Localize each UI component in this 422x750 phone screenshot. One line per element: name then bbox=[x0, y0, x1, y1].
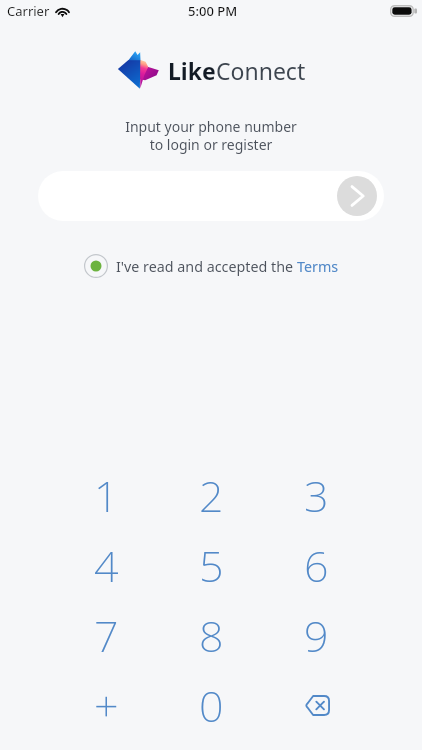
staticText: Like bbox=[168, 55, 216, 86]
button[interactable]: 3 bbox=[264, 460, 369, 530]
staticText: 3 bbox=[304, 466, 329, 525]
button[interactable]: 2 bbox=[159, 460, 264, 530]
staticText: 6 bbox=[304, 536, 329, 595]
button[interactable]: Backspace bbox=[264, 670, 369, 740]
button[interactable]: 1 bbox=[53, 460, 159, 530]
staticText: 7 bbox=[94, 606, 119, 665]
button[interactable]: + bbox=[53, 670, 159, 740]
staticText: 2 bbox=[199, 466, 224, 525]
button[interactable]: 0 bbox=[159, 670, 264, 740]
staticText: 9 bbox=[304, 606, 329, 665]
button[interactable]: 9 bbox=[264, 600, 369, 670]
button[interactable]: I've read and accepted the bbox=[84, 251, 339, 281]
button[interactable]: Continue bbox=[337, 176, 377, 216]
button[interactable]: 8 bbox=[159, 600, 264, 670]
staticText: 5:00 PM bbox=[188, 2, 238, 20]
staticText: Carrier bbox=[7, 2, 50, 20]
staticText: Connect bbox=[216, 55, 306, 86]
staticText: 4 bbox=[94, 536, 119, 595]
staticText: Input your phone number to login or regi… bbox=[0, 117, 422, 154]
staticText: I've read and accepted the bbox=[116, 257, 297, 276]
button[interactable]: 7 bbox=[53, 600, 159, 670]
button[interactable]: 4 bbox=[53, 530, 159, 600]
staticText: 1 bbox=[94, 466, 119, 525]
staticText: 0 bbox=[199, 676, 224, 735]
button[interactable]: 5 bbox=[159, 530, 264, 600]
staticText: Terms bbox=[297, 257, 339, 276]
button[interactable]: Phone number bbox=[38, 171, 384, 221]
staticText: 8 bbox=[199, 606, 224, 665]
button[interactable]: 6 bbox=[264, 530, 369, 600]
staticText: + bbox=[94, 676, 119, 735]
staticText: 5 bbox=[199, 536, 224, 595]
